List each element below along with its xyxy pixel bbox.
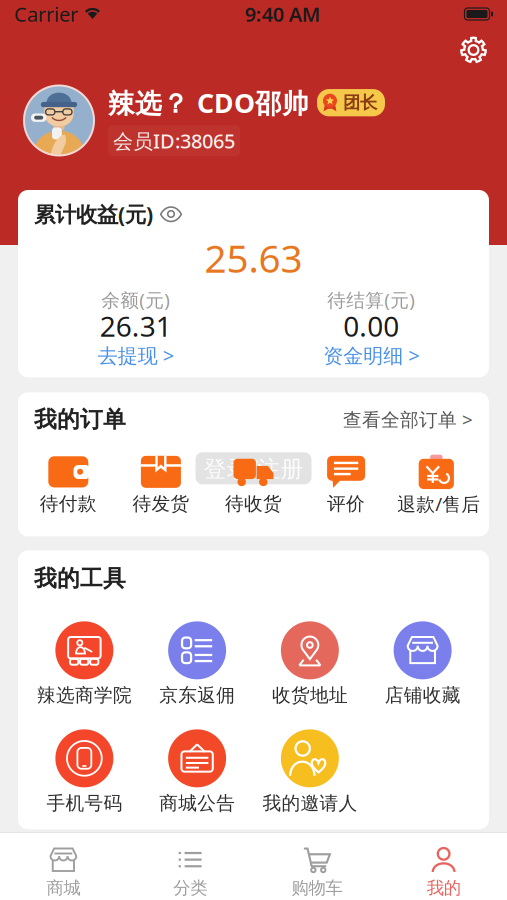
staticText: 查看全部订单 > — [343, 407, 473, 432]
staticText: 会员ID:38065 — [113, 127, 235, 154]
staticText: 商城公告 — [159, 792, 235, 815]
staticText: 分类 — [173, 877, 207, 899]
staticText: 京东返佣 — [159, 684, 235, 707]
staticText: 我的订单 — [34, 405, 126, 433]
button[interactable]: 退款/售后 — [392, 454, 485, 518]
staticText: 辣选？ CDO邵帅 — [108, 85, 309, 120]
staticText: Carrier — [14, 1, 78, 27]
staticText: 25.63 — [204, 232, 302, 283]
button[interactable]: 待付款 — [22, 454, 115, 518]
button[interactable]: 评价 — [300, 454, 392, 518]
button[interactable]: 登录/注册 — [195, 452, 311, 484]
staticText: 团长 — [343, 92, 377, 113]
staticText: 评价 — [327, 492, 365, 515]
button[interactable]: 分类 — [127, 833, 254, 900]
staticText: 我的 — [427, 877, 461, 899]
staticText: 登录/注册 — [203, 453, 303, 483]
staticText: 购物车 — [291, 877, 342, 899]
staticText: 待收货 — [225, 492, 282, 515]
staticText: 0.00 — [343, 307, 399, 344]
button[interactable]: 辣选商学院 — [28, 621, 141, 711]
staticText: 待付款 — [40, 492, 97, 515]
staticText: 我的邀请人 — [262, 792, 357, 815]
button[interactable]: 资金明细 > — [323, 341, 419, 369]
button[interactable]: 商城 — [0, 833, 127, 900]
button[interactable]: 去提现 > — [98, 341, 174, 369]
staticText: 待发货 — [132, 492, 189, 515]
staticText: 退款/售后 — [397, 491, 480, 516]
button[interactable]: Settings — [454, 30, 493, 69]
staticText: 累计收益(元) — [34, 200, 153, 228]
button[interactable]: 店铺收藏 — [366, 621, 479, 711]
button[interactable]: 我的 — [380, 833, 507, 900]
staticText: 商城 — [46, 877, 80, 899]
button[interactable]: 手机号码 — [28, 729, 141, 819]
staticText: 店铺收藏 — [385, 684, 461, 707]
staticText: 待结算(元) — [327, 287, 415, 312]
button[interactable]: 我的邀请人 — [253, 729, 366, 819]
staticText: 收货地址 — [272, 684, 348, 707]
button[interactable]: 待收货 — [207, 454, 300, 518]
staticText: 9:40 AM — [245, 1, 321, 27]
button[interactable]: 查看全部订单 > — [343, 407, 473, 432]
staticText: 去提现 > — [98, 342, 174, 369]
staticText: 资金明细 > — [323, 342, 419, 369]
button[interactable]: 京东返佣 — [141, 621, 254, 711]
button[interactable]: 商城公告 — [141, 729, 254, 819]
button[interactable]: 收货地址 — [253, 621, 366, 711]
staticText: 手机号码 — [46, 792, 122, 815]
staticText: 余额(元) — [101, 287, 170, 312]
staticText: 辣选商学院 — [37, 684, 132, 707]
staticText: 我的工具 — [34, 564, 126, 592]
staticText: 26.31 — [100, 307, 172, 344]
button[interactable]: 购物车 — [253, 833, 380, 900]
button[interactable]: 待发货 — [115, 454, 207, 518]
